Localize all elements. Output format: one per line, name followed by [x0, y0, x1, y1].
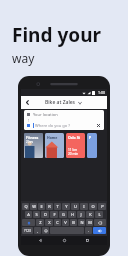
staticText: U	[74, 204, 77, 209]
staticText: Bike at Zales	[45, 99, 76, 106]
button[interactable]: Where do you go ?	[27, 123, 101, 128]
button[interactable]: Back	[21, 96, 34, 109]
staticText: 20 min	[68, 152, 79, 156]
button[interactable]: W	[30, 203, 37, 210]
staticText: Find your	[12, 22, 101, 48]
staticText: A	[27, 212, 30, 217]
button[interactable]: Back	[36, 236, 45, 245]
button[interactable]: .	[85, 227, 92, 234]
staticText: M	[88, 220, 92, 225]
staticText: H	[71, 212, 74, 217]
button[interactable]: I	[80, 203, 88, 210]
button[interactable]: ☺	[42, 227, 49, 234]
staticText: D	[44, 212, 47, 217]
staticText: 2 hrs	[26, 140, 34, 144]
staticText: Z	[39, 220, 42, 225]
button[interactable]: Clear	[96, 123, 101, 128]
staticText: R	[48, 204, 51, 209]
button[interactable]: J	[77, 211, 85, 218]
staticText: Q	[24, 204, 28, 209]
button[interactable]: Enter	[93, 227, 106, 234]
staticText: V	[64, 220, 67, 225]
staticText: F	[53, 212, 56, 217]
button[interactable]: L	[95, 211, 103, 218]
button[interactable]: ?123	[22, 227, 33, 234]
button[interactable]: R	[46, 203, 53, 210]
button[interactable]: E	[38, 203, 45, 210]
button[interactable]: Home	[45, 133, 64, 158]
button[interactable]: T	[54, 203, 61, 210]
button[interactable]: P	[98, 203, 106, 210]
button[interactable]: V	[62, 219, 69, 226]
button[interactable]: D	[41, 211, 49, 218]
staticText: J	[80, 212, 82, 217]
button[interactable]: Backspace	[94, 219, 106, 226]
button[interactable]: N	[78, 219, 85, 226]
button[interactable]: A	[25, 211, 32, 218]
staticText: ☺	[44, 229, 48, 233]
button[interactable]: G	[59, 211, 67, 218]
staticText: ,	[37, 229, 38, 233]
staticText: 11 km	[68, 148, 78, 152]
button[interactable]: Oslo St	[66, 133, 85, 158]
staticText: 1:00	[98, 90, 105, 95]
staticText: K	[89, 212, 92, 217]
staticText: L	[98, 212, 101, 217]
button[interactable]: ,	[34, 227, 41, 234]
staticText: C	[56, 220, 59, 225]
button[interactable]: K	[86, 211, 94, 218]
staticText: G	[62, 212, 65, 217]
button[interactable]: Q	[22, 203, 29, 210]
staticText: P	[89, 135, 92, 140]
staticText: B	[72, 220, 75, 225]
button[interactable]: U	[71, 203, 79, 210]
button[interactable]: Shift	[22, 219, 35, 226]
staticText: O	[91, 204, 95, 209]
staticText: T	[56, 204, 59, 209]
staticText: I	[83, 204, 85, 209]
button[interactable]: H	[68, 211, 76, 218]
staticText: Oslo St	[68, 135, 81, 140]
button[interactable]: S	[33, 211, 40, 218]
button[interactable]: M	[86, 219, 93, 226]
button[interactable]: X	[45, 219, 53, 226]
staticText: W	[32, 204, 36, 209]
staticText: X	[48, 220, 51, 225]
staticText: Where do you go ?	[35, 123, 70, 128]
button[interactable]: Fitness	[24, 133, 43, 158]
staticText: Fitness	[26, 135, 39, 140]
staticText: P	[101, 204, 104, 209]
button[interactable]: Z	[36, 219, 44, 226]
button[interactable]: B	[70, 219, 77, 226]
staticText: Y	[65, 204, 68, 209]
staticText: ?123	[24, 229, 31, 233]
staticText: Home	[47, 135, 58, 140]
button[interactable]: Your location	[27, 112, 101, 117]
staticText: Your location	[33, 112, 58, 117]
staticText: N	[80, 220, 84, 225]
staticText: S	[35, 212, 38, 217]
button[interactable]: F	[50, 211, 58, 218]
staticText: E	[40, 204, 43, 209]
button[interactable]: P	[87, 133, 97, 158]
button[interactable]: Home	[60, 236, 69, 245]
button[interactable]: Y	[62, 203, 70, 210]
staticText: .	[88, 229, 89, 233]
button[interactable]: Recents	[83, 236, 92, 245]
button[interactable]: C	[54, 219, 61, 226]
staticText: way	[12, 50, 35, 66]
button[interactable]: O	[89, 203, 97, 210]
button[interactable]: Bike at Zales	[45, 99, 82, 106]
